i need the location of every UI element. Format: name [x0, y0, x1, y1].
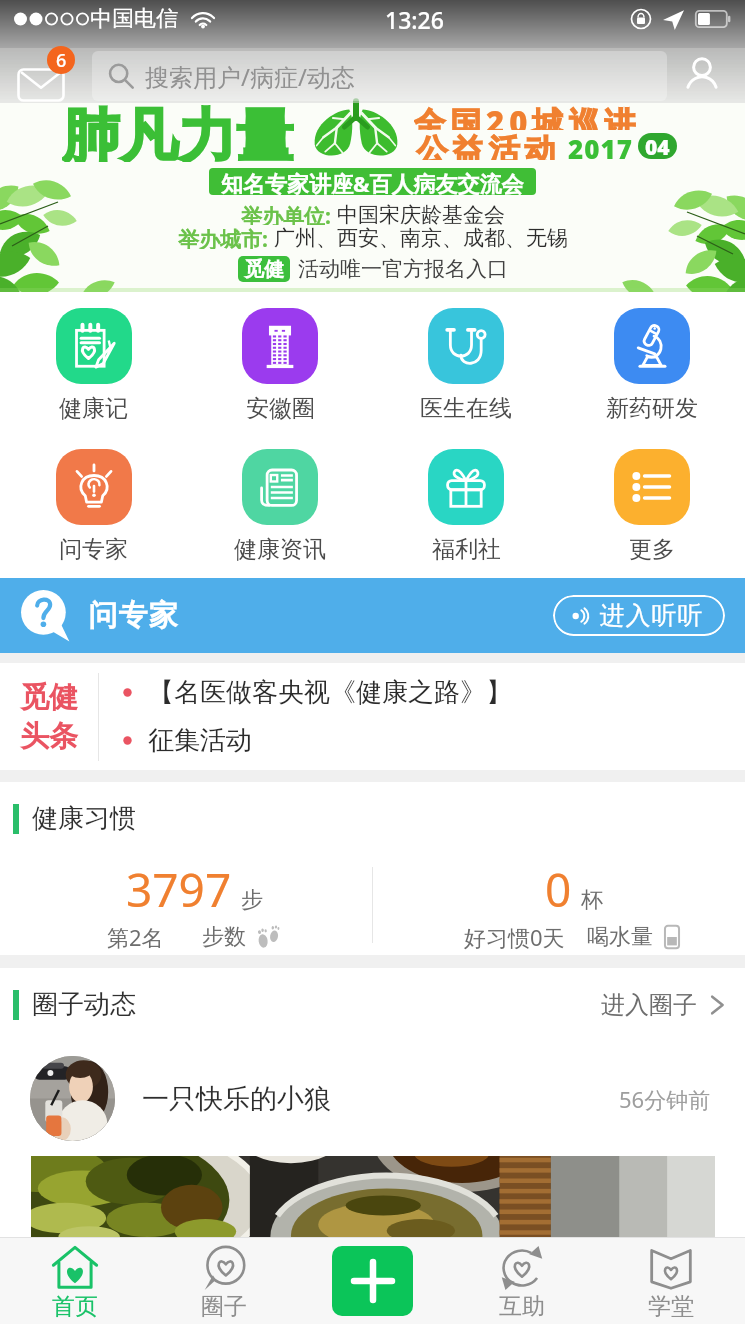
staticText: 13:26 — [385, 4, 444, 35]
staticText: 举办城市: — [178, 225, 274, 249]
staticText: 喝水量 — [587, 923, 653, 951]
staticText: 0 — [545, 858, 572, 921]
staticText: 学堂 — [648, 1292, 694, 1321]
staticText: 征集活动 — [148, 724, 252, 757]
button[interactable]: 福利社 — [373, 449, 559, 564]
staticText: 2017 — [568, 131, 633, 160]
staticText: 进入圈子 — [601, 990, 697, 1020]
staticText: 健康习惯 — [32, 802, 136, 835]
staticText: 觅健 — [244, 257, 284, 282]
button[interactable]: Profile — [673, 48, 731, 103]
button[interactable]: 一只快乐的小狼 — [30, 1041, 711, 1156]
button[interactable]: 安徽圈 — [187, 308, 373, 423]
staticText: 肺凡力量 — [62, 100, 294, 162]
button[interactable]: 问专家 — [20, 578, 725, 653]
button[interactable]: 首页 — [0, 1237, 149, 1324]
staticText: 6 — [56, 48, 67, 73]
staticText: 步数 — [202, 923, 246, 951]
button[interactable]: 学堂 — [596, 1237, 745, 1324]
staticText: 中国电信 — [90, 5, 178, 33]
staticText: 互助 — [499, 1292, 545, 1321]
staticText: 觅健 — [20, 679, 78, 716]
button[interactable]: 更多 — [559, 449, 745, 564]
button[interactable]: 健康记 — [0, 308, 187, 423]
staticText: 新药研发 — [606, 394, 698, 423]
staticText: 更多 — [629, 535, 675, 564]
staticText: 中国宋庆龄基金会 — [337, 202, 505, 225]
button[interactable]: 0 — [373, 855, 745, 955]
staticText: 问专家 — [88, 597, 178, 634]
staticText: 圈子 — [201, 1292, 247, 1321]
button[interactable]: 进入圈子 — [601, 990, 725, 1020]
staticText: 圈子动态 — [32, 988, 136, 1021]
staticText: 健康资讯 — [234, 535, 326, 564]
staticText: 搜索用户/病症/动态 — [145, 60, 355, 93]
staticText: 步 — [241, 886, 263, 914]
staticText: 健康记 — [59, 394, 128, 423]
staticText: 第2名 — [107, 922, 164, 952]
staticText: 知名专家讲座&百人病友交流会 — [221, 168, 524, 195]
staticText: 进入听听 — [599, 600, 703, 631]
staticText: 问专家 — [59, 535, 128, 564]
staticText: 首页 — [52, 1292, 98, 1321]
button[interactable]: 新药研发 — [559, 308, 745, 423]
button[interactable]: 【名医做客央视《健康之路》】 — [123, 676, 731, 709]
staticText: 好习惯0天 — [464, 922, 565, 952]
button[interactable]: Messages — [16, 50, 66, 102]
staticText: 医生在线 — [420, 394, 512, 423]
button[interactable]: Add post — [332, 1246, 413, 1316]
staticText: 广州、西安、南京、成都、无锡 — [274, 225, 568, 249]
button[interactable]: 问专家 — [0, 449, 187, 564]
staticText: 头条 — [20, 718, 78, 755]
button[interactable]: 搜索用户/病症/动态 — [108, 51, 667, 101]
staticText: 04 — [645, 133, 670, 159]
staticText: 举办单位: — [241, 202, 337, 225]
button[interactable]: 进入听听 — [571, 595, 703, 636]
staticText: 56分钟前 — [619, 1084, 711, 1114]
staticText: 【名医做客央视《健康之路》】 — [148, 676, 512, 709]
staticText: 3797 — [126, 858, 232, 921]
button[interactable]: 互助 — [447, 1237, 596, 1324]
staticText: 全国20城巡讲 — [414, 101, 641, 130]
button[interactable]: 圈子 — [149, 1237, 298, 1324]
button[interactable]: 医生在线 — [373, 308, 559, 423]
staticText: 安徽圈 — [246, 394, 315, 423]
staticText: 杯 — [581, 886, 603, 914]
staticText: 福利社 — [432, 535, 501, 564]
button[interactable]: 健康资讯 — [187, 449, 373, 564]
staticText: 公益活动 — [414, 131, 558, 160]
button[interactable]: 征集活动 — [123, 724, 731, 757]
staticText: 一只快乐的小狼 — [142, 1082, 331, 1116]
staticText: 活动唯一官方报名入口 — [298, 256, 508, 282]
button[interactable]: 3797 — [0, 855, 372, 955]
